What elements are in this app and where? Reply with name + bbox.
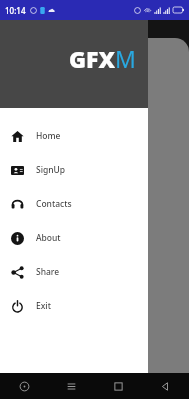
staticText: SignUp — [36, 164, 66, 176]
staticText: ects — [10, 168, 24, 178]
staticText: About — [36, 232, 61, 244]
staticText: Exit — [36, 300, 51, 312]
button[interactable]: Share — [0, 255, 148, 289]
button[interactable]: Recents — [48, 373, 95, 399]
staticText: Contacts — [36, 198, 72, 210]
button[interactable]: About — [0, 221, 148, 255]
button[interactable]: Assistant — [0, 373, 48, 399]
staticText: GFXM — [69, 43, 136, 74]
staticText: Home — [36, 130, 61, 142]
button[interactable]: SignUp — [0, 153, 148, 187]
button[interactable]: Home — [95, 373, 142, 399]
staticText: Share — [36, 266, 60, 278]
button[interactable]: Exit — [0, 289, 148, 323]
button[interactable]: Back — [142, 373, 189, 399]
button[interactable]: Home — [0, 119, 148, 153]
button[interactable]: Contacts — [0, 187, 148, 221]
staticText: 10:14 — [5, 5, 26, 16]
